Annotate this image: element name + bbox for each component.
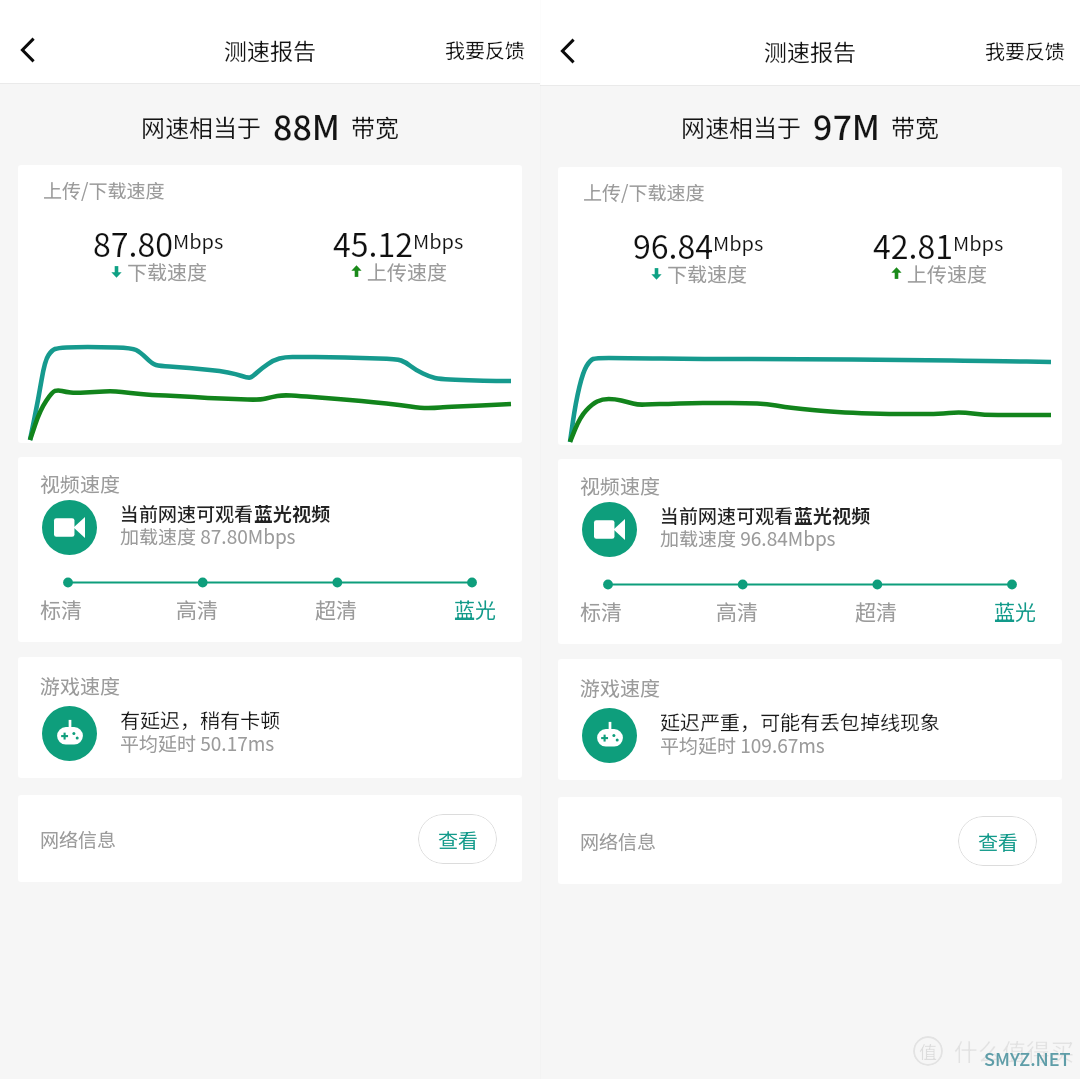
staticText: 加载速度 87.80Mbps — [120, 522, 296, 550]
staticText: 超清 — [855, 596, 897, 626]
staticText: 42.81 — [873, 222, 953, 262]
staticText: Mbps — [953, 228, 1004, 257]
staticText: 测速报告 — [224, 33, 316, 66]
button[interactable]: 返回 — [546, 29, 590, 73]
staticText: 蓝光视频 — [794, 501, 871, 529]
button[interactable]: 我要反馈 — [430, 25, 540, 74]
button[interactable]: 查看 — [958, 816, 1037, 866]
staticText: 延迟严重，可能有丢包掉线现象 — [660, 707, 940, 736]
staticText: 上传/下载速度 — [583, 178, 705, 206]
staticText: 加载速度 96.84Mbps — [660, 524, 836, 552]
staticText: 值 — [919, 1038, 937, 1064]
staticText: 蓝光视频 — [254, 499, 331, 527]
staticText: 查看 — [978, 827, 1018, 856]
staticText: 带宽 — [891, 109, 939, 144]
staticText: 97M — [813, 101, 880, 150]
staticText: 什么值得买 — [954, 1033, 1074, 1068]
staticText: 网速相当于 — [141, 109, 261, 144]
staticText: 下载速度 — [127, 257, 207, 286]
staticText: 超清 — [315, 594, 357, 624]
staticText: Mbps — [413, 226, 464, 255]
staticText: 高清 — [716, 596, 758, 626]
staticText: 我要反馈 — [445, 35, 525, 64]
staticText: 我要反馈 — [985, 36, 1065, 65]
staticText: 蓝光 — [454, 594, 496, 624]
staticText: 测速报告 — [764, 34, 856, 67]
staticText: 96.84 — [633, 222, 713, 262]
staticText: 标清 — [580, 596, 622, 626]
staticText: 查看 — [438, 825, 478, 854]
staticText: 网络信息 — [40, 825, 117, 853]
staticText: 上传/下载速度 — [43, 176, 165, 204]
staticText: 视频速度 — [40, 469, 120, 498]
staticText: 上传速度 — [367, 257, 447, 286]
staticText: 88M — [273, 101, 340, 150]
staticText: 当前网速可观看 — [120, 499, 254, 527]
staticText: 网络信息 — [580, 827, 657, 855]
button[interactable]: 返回 — [6, 28, 50, 72]
staticText: 标清 — [40, 594, 82, 624]
staticText: 高清 — [176, 594, 218, 624]
staticText: 视频速度 — [580, 471, 660, 500]
staticText: 蓝光 — [994, 596, 1036, 626]
staticText: 平均延时 50.17ms — [120, 729, 275, 757]
staticText: 带宽 — [351, 109, 399, 144]
staticText: 下载速度 — [667, 259, 747, 288]
staticText: 网速相当于 — [681, 109, 801, 144]
button[interactable]: 我要反馈 — [970, 26, 1080, 75]
button[interactable]: 查看 — [418, 814, 497, 864]
staticText: 游戏速度 — [40, 671, 120, 700]
staticText: Mbps — [173, 226, 224, 255]
staticText: SMYZ.NET — [984, 1045, 1071, 1071]
staticText: 有延迟，稍有卡顿 — [120, 705, 280, 734]
staticText: 上传速度 — [907, 259, 987, 288]
staticText: 游戏速度 — [580, 673, 660, 702]
staticText: 平均延时 109.67ms — [660, 731, 825, 759]
staticText: 当前网速可观看 — [660, 501, 794, 529]
staticText: Mbps — [713, 228, 764, 257]
staticText: 45.12 — [333, 220, 413, 260]
staticText: 87.80 — [93, 220, 173, 260]
